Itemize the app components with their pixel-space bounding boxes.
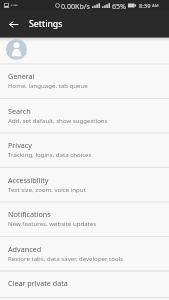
button[interactable]: Search xyxy=(0,99,169,134)
staticText: Restore tabs, data saver, developer tool… xyxy=(8,254,124,262)
staticText: AM xyxy=(152,3,159,9)
staticText: 0.00Kb/s xyxy=(61,1,90,11)
staticText: Accessibility xyxy=(8,175,49,185)
staticText: Notifications xyxy=(8,209,51,219)
staticText: Advanced xyxy=(8,244,42,254)
staticText: Settings xyxy=(29,18,63,30)
staticText: Search xyxy=(8,106,31,116)
staticText: Tracking, logins, data choices xyxy=(8,150,92,158)
staticText: 65% xyxy=(112,1,127,11)
staticText: Clear private data xyxy=(8,278,68,288)
button[interactable]: Back xyxy=(0,11,26,37)
button[interactable]: Notifications xyxy=(0,202,169,237)
button[interactable]: Clear private data xyxy=(0,271,169,298)
staticText: Privacy xyxy=(8,140,32,150)
button[interactable]: Account xyxy=(6,39,27,60)
button[interactable]: General xyxy=(0,64,169,99)
staticText: Home, language, tab queue xyxy=(8,81,88,89)
staticText: Text size, zoom, voice input xyxy=(8,185,86,193)
staticText: New features, website updates xyxy=(8,219,97,227)
staticText: Add, set default, show suggestions xyxy=(8,116,108,124)
staticText: General xyxy=(8,71,35,81)
staticText: 8:39 xyxy=(139,2,151,10)
button[interactable]: Advanced xyxy=(0,237,169,272)
button[interactable]: Privacy xyxy=(0,133,169,168)
button[interactable]: Accessibility xyxy=(0,168,169,203)
